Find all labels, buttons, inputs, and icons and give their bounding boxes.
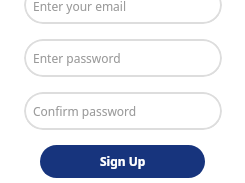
button[interactable]: Enter password bbox=[24, 39, 222, 77]
button[interactable]: Confirm password bbox=[24, 92, 222, 130]
staticText: Confirm password bbox=[33, 103, 137, 119]
staticText: Enter your email bbox=[33, 0, 127, 14]
button[interactable]: Sign Up bbox=[40, 145, 205, 178]
staticText: Enter password bbox=[33, 50, 121, 66]
button[interactable]: Enter your email bbox=[24, 0, 222, 24]
staticText: Sign Up bbox=[100, 153, 146, 169]
